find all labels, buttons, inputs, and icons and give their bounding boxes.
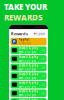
button[interactable]: Install & play — [10, 89, 46, 97]
staticText: PayPal — [18, 38, 29, 41]
staticText: Earn 250 pts — [19, 93, 36, 97]
button[interactable]: Install & play — [10, 98, 46, 100]
button[interactable]: Install & play — [10, 55, 46, 63]
staticText: REWARDS — [4, 12, 43, 23]
staticText: Install & play — [19, 55, 39, 59]
button[interactable]: Install & play — [10, 64, 46, 71]
staticText: Redeem — [18, 42, 30, 45]
staticText: Rewards — [11, 31, 28, 36]
staticText: Install & play — [19, 90, 39, 93]
staticText: Earn 250 pts — [19, 85, 36, 88]
staticText: Earn 250 pts — [19, 50, 36, 54]
staticText: TAKE YOUR — [4, 1, 47, 12]
staticText: Earn 250 pts — [19, 68, 36, 71]
staticText: 1,240 — [36, 32, 45, 35]
staticText: Install & play — [19, 81, 39, 84]
staticText: Install & play — [19, 47, 39, 50]
button[interactable]: P — [10, 38, 46, 45]
staticText: Install & play — [19, 98, 39, 100]
staticText: Install & play — [19, 64, 39, 67]
button[interactable]: Install & play — [10, 72, 46, 80]
staticText: Earn 250 pts — [19, 76, 36, 80]
staticText: Install & play — [19, 72, 39, 76]
button[interactable]: Install & play — [10, 46, 46, 54]
staticText: Earn 250 pts — [19, 59, 36, 62]
button[interactable]: Install & play — [10, 81, 46, 88]
staticText: P — [13, 39, 16, 44]
